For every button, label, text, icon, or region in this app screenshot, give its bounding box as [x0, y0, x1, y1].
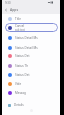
button[interactable]: Messag — [5, 89, 58, 97]
staticText: 9:30 — [5, 1, 11, 5]
button[interactable]: Back — [3, 7, 9, 13]
staticText: Vide — [15, 82, 22, 86]
button[interactable]: Status Detail Ms — [5, 34, 58, 42]
staticText: Details — [14, 103, 24, 107]
staticText: Apps — [10, 7, 19, 12]
button[interactable]: Status Det — [5, 52, 58, 60]
staticText: Status Detail Ms — [15, 36, 38, 40]
staticText: Status Det — [15, 54, 30, 58]
button[interactable]: Status Detail Ms — [5, 44, 58, 52]
staticText: Title — [15, 17, 21, 21]
staticText: Status Det — [15, 73, 30, 77]
staticText: Status Detail Ms — [15, 46, 38, 50]
staticText: Messag — [15, 91, 26, 95]
staticText: Cancel — [15, 24, 25, 28]
button[interactable]: Vide — [5, 80, 58, 88]
button[interactable]: Cancel — [5, 23, 58, 32]
button[interactable]: Status Det — [5, 71, 58, 79]
button[interactable]: Details — [5, 101, 58, 109]
button[interactable]: Title — [5, 15, 58, 23]
staticText: sub text — [15, 28, 25, 32]
button[interactable]: Status Th — [5, 62, 58, 70]
staticText: Status Th — [15, 64, 29, 68]
